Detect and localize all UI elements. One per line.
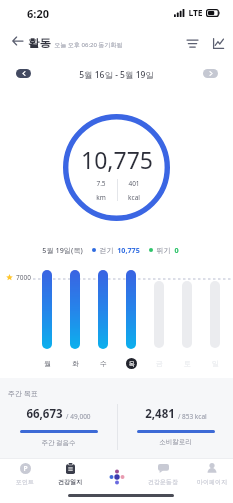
button[interactable]: P <box>2 460 48 494</box>
staticText: 오늘 오후 06:20 동기화됨 <box>54 41 123 49</box>
staticText: 건강일지 <box>58 478 82 486</box>
staticText: P <box>23 464 28 473</box>
staticText: 걷기 <box>99 246 114 255</box>
staticText: LTE <box>188 7 203 19</box>
button[interactable]: Back <box>6 30 28 52</box>
staticText: 2,481 <box>145 406 175 422</box>
staticText: 뛰기 <box>156 246 171 255</box>
staticText: 5월 16일 - 5월 19일 <box>79 69 154 81</box>
staticText: 5월 19일(목) <box>42 245 83 255</box>
button[interactable]: Home <box>94 460 140 494</box>
staticText: 주간 목표 <box>8 389 38 399</box>
staticText: 월 <box>44 359 51 368</box>
button[interactable]: 건강운동장 <box>140 460 186 494</box>
staticText: km <box>96 193 106 201</box>
staticText: 66,673 <box>26 406 63 422</box>
staticText: / 49,000 <box>64 412 91 421</box>
staticText: 목 <box>129 360 135 368</box>
staticText: 마이페이지 <box>197 478 227 486</box>
staticText: 건강운동장 <box>148 478 178 486</box>
staticText: kcal <box>128 193 140 201</box>
staticText: 0 <box>174 245 179 255</box>
staticText: 활동 <box>28 36 51 50</box>
staticText: 소비칼로리 <box>159 438 192 446</box>
button[interactable]: 마이페이지 <box>189 460 233 494</box>
staticText: 10,775 <box>81 144 153 175</box>
staticText: 주간 걸음수 <box>41 438 76 447</box>
button[interactable]: Previous period <box>16 69 31 78</box>
staticText: 7.5 <box>96 179 106 188</box>
staticText: / 853 kcal <box>176 412 207 421</box>
staticText: 화 <box>72 359 79 368</box>
staticText: 10,775 <box>117 245 140 255</box>
staticText: 7000 <box>16 273 31 282</box>
staticText: 401 <box>128 179 140 188</box>
button[interactable]: 건강일지 <box>47 460 93 494</box>
staticText: 6:20 <box>27 6 49 21</box>
staticText: 일 <box>212 359 219 368</box>
button[interactable]: Next period <box>203 69 218 78</box>
staticText: 포인트 <box>16 478 34 486</box>
button[interactable]: Statistics <box>207 32 229 54</box>
staticText: 금 <box>156 359 163 368</box>
staticText: 수 <box>100 359 107 368</box>
staticText: 토 <box>184 359 191 368</box>
button[interactable]: Sort list <box>181 32 203 54</box>
